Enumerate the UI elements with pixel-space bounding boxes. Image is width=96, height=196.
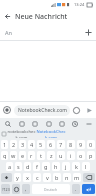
staticText: r	[30, 152, 33, 159]
staticText: b	[55, 174, 59, 181]
staticText: h	[54, 163, 58, 170]
button[interactable]: r	[28, 151, 35, 160]
staticText: q	[3, 152, 7, 159]
button[interactable]: Emoji	[12, 184, 20, 194]
button[interactable]: s	[15, 162, 22, 171]
button[interactable]: e	[19, 151, 26, 160]
button[interactable]: l	[82, 162, 90, 171]
staticText: ,	[25, 186, 27, 193]
staticText: 8	[69, 141, 73, 148]
button[interactable]: 9	[77, 140, 85, 149]
staticText: 4	[30, 141, 34, 148]
staticText: y	[16, 174, 19, 181]
button[interactable]: Kontakt hinzufügen	[80, 24, 96, 40]
button[interactable]: t	[37, 151, 45, 160]
staticText: NotebookCheck.com	[18, 107, 67, 114]
button[interactable]: v	[43, 173, 51, 182]
button[interactable]: 8	[67, 140, 75, 149]
button[interactable]: Tastaturwerkzeug 6	[69, 118, 80, 129]
staticText: s	[17, 163, 20, 170]
staticText: 13:24	[74, 2, 85, 7]
button[interactable]: 0	[87, 140, 95, 149]
button[interactable]: k	[72, 162, 80, 171]
staticText: i	[70, 152, 72, 159]
button[interactable]: w	[10, 151, 17, 160]
staticText: x	[26, 174, 29, 181]
staticText: v	[46, 174, 49, 181]
button[interactable]: h	[52, 162, 60, 171]
button[interactable]: 4	[28, 140, 35, 149]
button[interactable]: Tastaturwerkzeug 2	[16, 118, 27, 129]
staticText: 5	[39, 141, 43, 148]
button[interactable]: 3	[19, 140, 26, 149]
button[interactable]: 5	[37, 140, 45, 149]
staticText: notebookcheck.com	[7, 129, 36, 138]
button[interactable]: 6	[47, 140, 55, 149]
staticText: t	[40, 152, 42, 159]
staticText: o	[79, 152, 83, 159]
button[interactable]: notebookcheck.com	[7, 129, 36, 138]
staticText: g	[44, 163, 48, 170]
button[interactable]: j	[62, 162, 70, 171]
button[interactable]: Tastaturwerkzeug 4	[43, 118, 54, 129]
staticText: 9	[79, 141, 83, 148]
staticText: d	[26, 163, 30, 170]
button[interactable]: m	[73, 173, 81, 182]
button[interactable]: b	[53, 173, 61, 182]
staticText: w	[11, 152, 16, 159]
staticText: a	[8, 163, 12, 170]
button[interactable]: y	[14, 173, 21, 182]
button[interactable]: 7	[57, 140, 65, 149]
button[interactable]: Zwischenablage	[0, 129, 7, 138]
staticText: ?123	[2, 187, 10, 192]
button[interactable]: u	[57, 151, 65, 160]
button[interactable]: .	[72, 184, 80, 194]
button[interactable]: Tastaturwerkzeug 3	[29, 118, 40, 129]
button[interactable]: Senden	[83, 104, 96, 117]
button[interactable]: NotebookCheck.com	[36, 129, 66, 138]
button[interactable]: Anhang hinzufügen	[0, 103, 14, 117]
button[interactable]: Emoji	[70, 104, 83, 117]
button[interactable]: Umschalttaste	[1, 173, 12, 182]
button[interactable]: NotebookCheck.com	[14, 105, 70, 116]
staticText: 6	[49, 141, 53, 148]
button[interactable]: ,	[22, 184, 30, 194]
button[interactable]: q	[1, 151, 8, 160]
button[interactable]: o	[77, 151, 85, 160]
staticText: j	[65, 163, 67, 170]
button[interactable]: 2	[10, 140, 17, 149]
staticText: p	[89, 152, 93, 159]
button[interactable]: 1	[1, 140, 8, 149]
button[interactable]: Tastaturwerkzeug 1	[2, 118, 13, 129]
button[interactable]: Leertaste	[32, 184, 70, 194]
button[interactable]: c	[33, 173, 41, 182]
staticText: k	[75, 163, 78, 170]
staticText: n	[65, 174, 69, 181]
button[interactable]: g	[42, 162, 50, 171]
staticText: Deutsch	[44, 187, 58, 192]
button[interactable]: Mehr	[83, 118, 94, 129]
staticText: 7	[59, 141, 63, 148]
button[interactable]: ?123	[1, 184, 10, 194]
button[interactable]: n	[63, 173, 71, 182]
staticText: An	[5, 29, 12, 36]
button[interactable]: p	[87, 151, 95, 160]
button[interactable]: i	[67, 151, 75, 160]
staticText: 0	[89, 141, 93, 148]
button[interactable]: Eingabe	[82, 184, 95, 194]
staticText: c	[36, 174, 39, 181]
staticText: Neue Nachricht	[15, 12, 68, 22]
button[interactable]: Zurück	[0, 9, 15, 24]
staticText: l	[85, 163, 87, 170]
staticText: 1	[3, 141, 7, 148]
button[interactable]: f	[33, 162, 40, 171]
button[interactable]: a	[6, 162, 13, 171]
staticText: m	[74, 174, 80, 181]
button[interactable]: z	[47, 151, 55, 160]
button[interactable]: d	[24, 162, 31, 171]
button[interactable]: Löschen	[83, 173, 95, 182]
staticText: 3	[21, 141, 25, 148]
button[interactable]: Tastaturwerkzeug 5	[56, 118, 67, 129]
button[interactable]: x	[23, 173, 31, 182]
